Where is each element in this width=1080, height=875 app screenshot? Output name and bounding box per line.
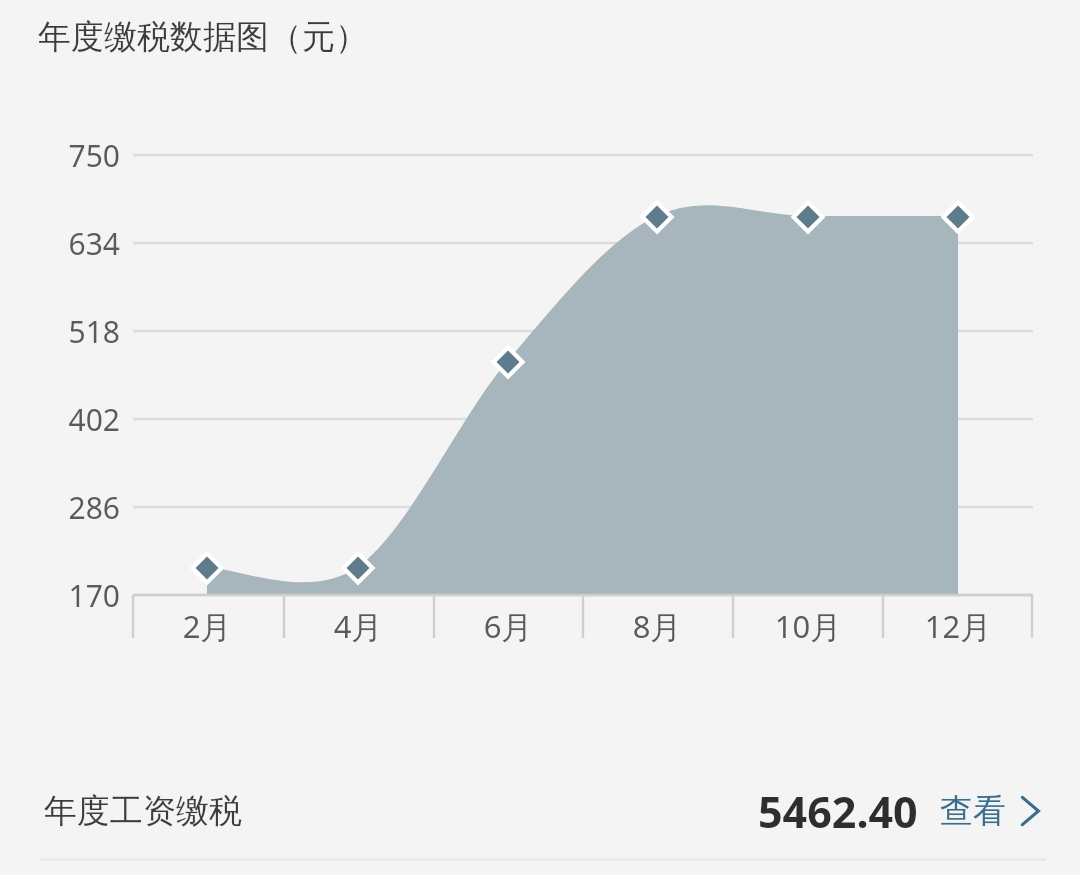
staticText: 634 <box>0 223 120 264</box>
staticText: 查看 <box>940 790 1006 832</box>
staticText: 2月 <box>147 605 267 647</box>
staticText: 年度缴税数据图（元） <box>38 16 368 58</box>
staticText: 750 <box>0 135 120 176</box>
staticText: 286 <box>0 487 120 528</box>
staticText: 5462.40 <box>758 782 918 841</box>
staticText: 4月 <box>298 605 418 647</box>
staticText: 6月 <box>448 605 568 647</box>
staticText: 12月 <box>898 605 1018 647</box>
other: 查看 <box>1020 794 1040 828</box>
staticText: 10月 <box>748 605 868 647</box>
staticText: 8月 <box>597 605 717 647</box>
staticText: 518 <box>0 311 120 352</box>
staticText: 170 <box>0 575 120 616</box>
staticText: 402 <box>0 399 120 440</box>
staticText: 年度工资缴税 <box>44 790 242 832</box>
button[interactable]: 年度工资缴税 <box>0 762 1080 860</box>
